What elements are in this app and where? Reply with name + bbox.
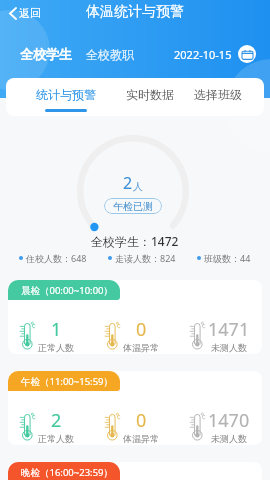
button[interactable]: 返回 <box>8 4 43 22</box>
button[interactable]: 全校教职 <box>86 47 134 62</box>
staticText: 午检（11:00~15:59） <box>21 375 113 388</box>
button[interactable]: 2022-10-15 <box>174 45 256 63</box>
staticText: 晚检（16:00~23:59） <box>21 466 113 479</box>
staticText: 1 <box>51 317 62 342</box>
staticText: 0 <box>136 408 147 433</box>
staticText: 人 <box>133 180 143 193</box>
button[interactable]: 午检已测 <box>104 198 162 214</box>
button[interactable]: 全校学生 <box>20 46 72 62</box>
staticText: 2022-10-15 <box>174 47 232 62</box>
staticText: 实时数据 <box>126 87 174 102</box>
button[interactable]: 选择班级 <box>186 78 250 116</box>
staticText: 1471 <box>208 317 250 342</box>
staticText: 班级数：44 <box>204 252 251 264</box>
staticText: 全校学生：1472 <box>91 233 179 249</box>
staticText: 晨检（00:00~10:00） <box>21 284 113 297</box>
button[interactable]: 统计与预警 <box>30 78 102 116</box>
staticText: 体温统计与预警 <box>86 3 184 21</box>
other: Pick date <box>238 45 256 63</box>
button[interactable]: 实时数据 <box>118 78 182 116</box>
staticText: 未测人数 <box>211 342 247 353</box>
staticText: 返回 <box>19 6 41 20</box>
staticText: 体温异常 <box>123 342 159 353</box>
staticText: 0 <box>136 317 147 342</box>
staticText: 住校人数：648 <box>26 252 87 264</box>
staticText: 午检已测 <box>113 200 153 213</box>
staticText: 1470 <box>208 408 250 433</box>
staticText: 正常人数 <box>38 433 74 444</box>
staticText: 2 <box>123 172 133 194</box>
staticText: 统计与预警 <box>36 87 96 102</box>
staticText: 2 <box>51 408 62 433</box>
staticText: 未测人数 <box>211 433 247 444</box>
staticText: 选择班级 <box>194 87 242 102</box>
staticText: 走读人数：824 <box>115 252 176 264</box>
staticText: 正常人数 <box>38 342 74 353</box>
staticText: 体温异常 <box>123 433 159 444</box>
